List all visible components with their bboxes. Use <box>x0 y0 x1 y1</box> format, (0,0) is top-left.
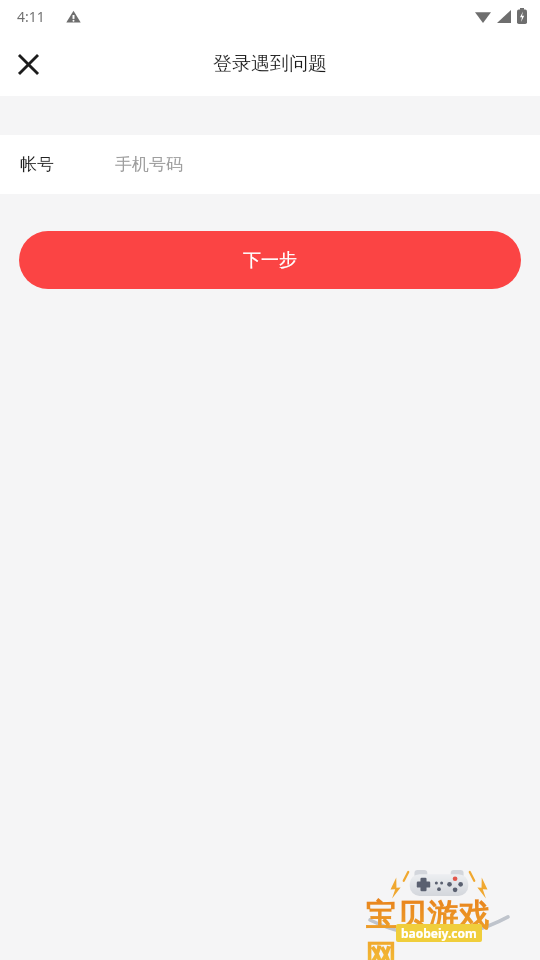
button[interactable]: 帐号 <box>0 135 540 194</box>
staticText: 帐号 <box>20 154 54 175</box>
staticText: 下一步 <box>243 249 297 272</box>
button[interactable]: 下一步 <box>19 231 521 289</box>
staticText: 手机号码 <box>115 154 183 175</box>
staticText: baobeiy.com <box>401 925 477 941</box>
staticText: 4:11 <box>17 7 45 26</box>
button[interactable]: Close <box>0 36 56 92</box>
staticText: 宝贝游戏网 <box>365 896 515 960</box>
staticText: 登录遇到问题 <box>213 52 327 76</box>
